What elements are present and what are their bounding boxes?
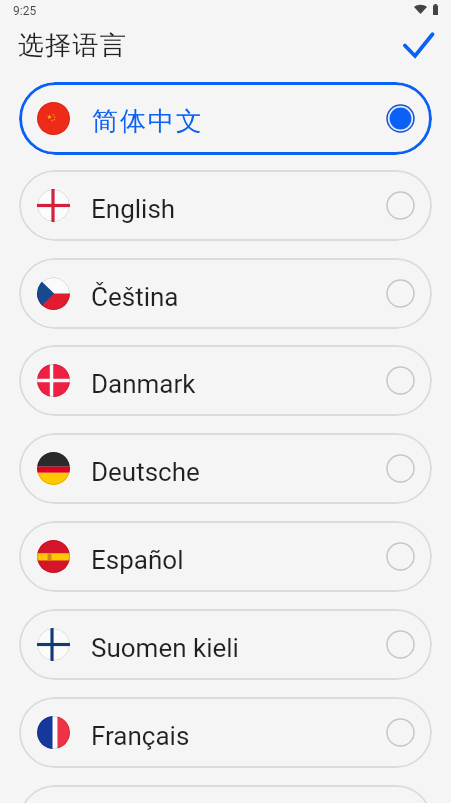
staticText: English (91, 194, 176, 224)
button[interactable]: Deutsche (19, 433, 432, 504)
button[interactable]: Confirm selection (396, 23, 440, 67)
button[interactable]: Español (19, 521, 432, 592)
staticText: Deutsche (91, 457, 200, 487)
staticText: Suomen kieli (91, 633, 239, 663)
staticText: Čeština (91, 282, 179, 312)
button[interactable]: English (19, 170, 432, 241)
staticText: Français (91, 721, 190, 751)
button[interactable]: Français (19, 697, 432, 768)
staticText: 选择语言 (18, 29, 128, 62)
button[interactable]: Suomen kieli (19, 609, 432, 680)
button[interactable]: Danmark (19, 345, 432, 416)
button[interactable]: Italiano (19, 785, 432, 803)
staticText: 简体中文 (91, 105, 203, 138)
staticText: 9:25 (13, 4, 37, 18)
staticText: Danmark (91, 369, 196, 399)
button[interactable]: 简体中文 (19, 82, 432, 155)
button[interactable]: Čeština (19, 258, 432, 329)
staticText: Español (91, 545, 184, 575)
